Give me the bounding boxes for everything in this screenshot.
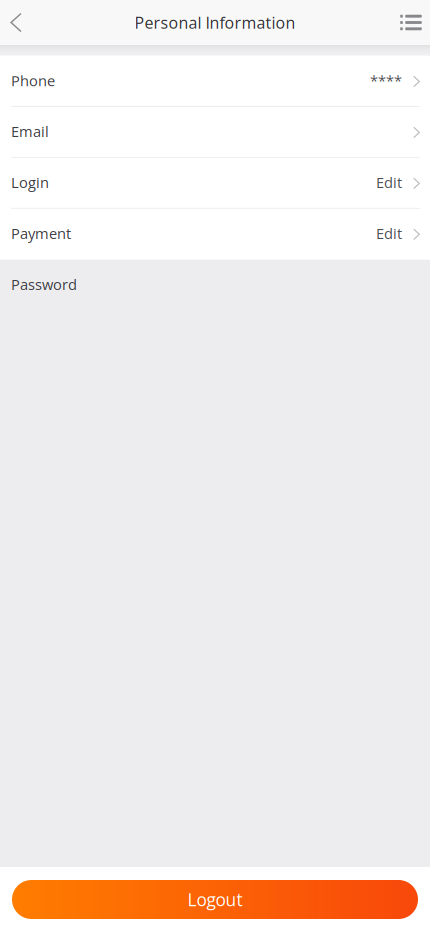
button[interactable]: Login <box>0 158 430 209</box>
button[interactable]: Password <box>0 260 430 311</box>
button[interactable]: Logout <box>12 880 418 919</box>
staticText: Logout <box>187 888 242 911</box>
staticText: Edit <box>376 172 402 192</box>
button[interactable]: Menu <box>394 0 428 45</box>
staticText: Password <box>11 274 77 294</box>
staticText: Personal Information <box>134 12 295 33</box>
button[interactable]: Payment <box>0 209 430 260</box>
button[interactable]: Phone <box>0 56 430 107</box>
staticText: Login <box>11 172 49 192</box>
button[interactable]: Back <box>0 0 32 45</box>
staticText: Payment <box>11 223 71 243</box>
staticText: Edit <box>376 223 402 243</box>
staticText: Phone <box>11 70 55 90</box>
staticText: Email <box>11 121 49 141</box>
button[interactable]: Email <box>0 107 430 158</box>
staticText: **** <box>370 70 402 90</box>
